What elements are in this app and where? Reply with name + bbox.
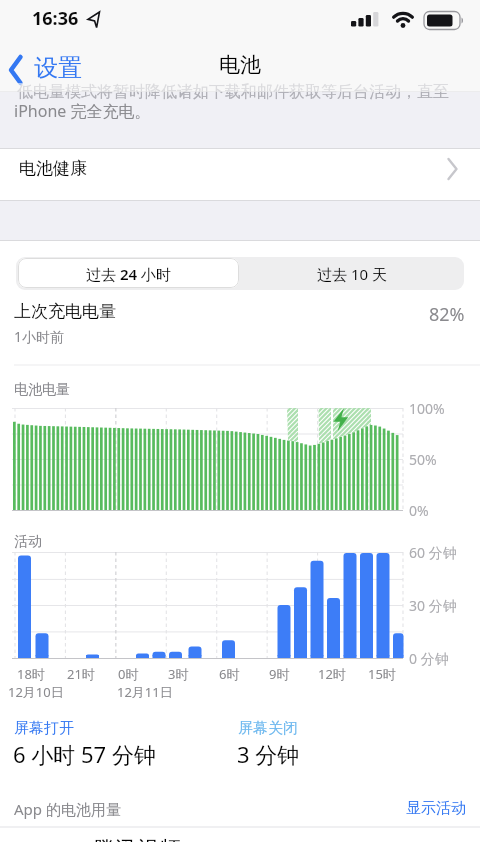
staticText: 30 分钟: [409, 596, 457, 615]
staticText: 屏幕关闭: [238, 719, 298, 738]
staticText: 屏幕打开: [14, 719, 74, 738]
staticText: 82%: [429, 302, 465, 327]
staticText: 50%: [409, 450, 437, 469]
staticText: App 的电池用量: [14, 799, 121, 819]
staticText: 过去 24 小时: [86, 264, 171, 284]
staticText: 设置: [34, 53, 82, 83]
staticText: 16:36: [32, 6, 79, 31]
staticText: 腾讯视频: [93, 836, 181, 842]
staticText: 100%: [409, 399, 445, 418]
staticText: 显示活动: [406, 799, 466, 818]
button[interactable]: 过去 10 天: [240, 257, 464, 290]
staticText: 12月10日: [8, 683, 64, 701]
staticText: 60 分钟: [409, 543, 457, 562]
staticText: 0%: [409, 501, 429, 520]
staticText: 0时: [118, 665, 139, 683]
staticText: 6时: [219, 665, 240, 683]
staticText: 低电量模式将暂时降低诸如下载和邮件获取等后台活动，直至: [17, 82, 449, 102]
staticText: 6 小时 57 分钟: [13, 739, 156, 769]
button[interactable]: 电池健康: [0, 149, 480, 201]
staticText: 3 分钟: [237, 739, 300, 769]
button[interactable]: 腾讯视频: [0, 829, 480, 842]
button[interactable]: 设置: [4, 46, 96, 90]
staticText: 18时: [17, 665, 45, 683]
staticText: 电池: [219, 52, 261, 78]
staticText: 21时: [67, 665, 95, 683]
staticText: 电池健康: [19, 158, 87, 179]
staticText: 上次充电电量: [14, 301, 116, 322]
staticText: 9时: [269, 665, 290, 683]
button[interactable]: 过去 24 小时: [16, 257, 240, 290]
button[interactable]: 显示活动: [406, 793, 466, 824]
staticText: iPhone 完全充电。: [14, 100, 151, 122]
staticText: 活动: [14, 533, 42, 551]
staticText: 12时: [318, 665, 346, 683]
staticText: 15时: [368, 665, 396, 683]
staticText: 12月11日: [117, 683, 173, 701]
staticText: 过去 10 天: [317, 264, 387, 284]
staticText: 1小时前: [14, 327, 65, 346]
staticText: 0 分钟: [409, 649, 449, 668]
staticText: 3时: [168, 665, 189, 683]
staticText: 电池电量: [14, 381, 70, 399]
